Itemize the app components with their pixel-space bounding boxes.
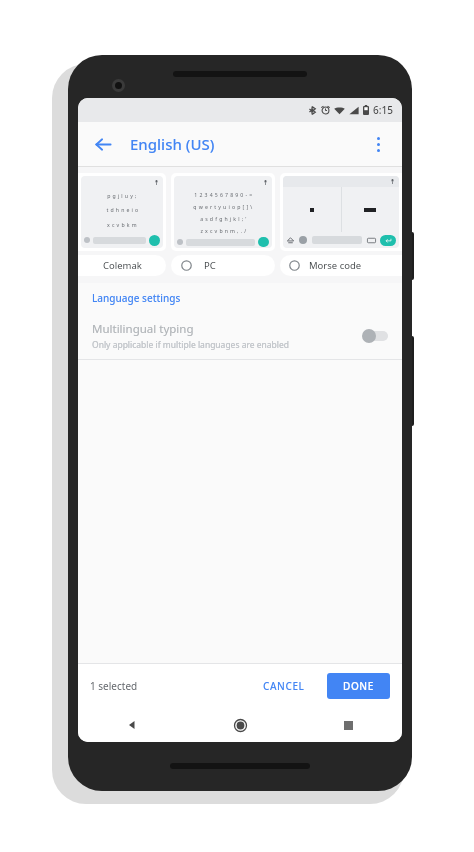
button[interactable]: More options <box>360 126 396 162</box>
staticText: CANCEL <box>263 679 305 693</box>
button[interactable]: 1 2 3 4 5 6 7 8 9 0 - = <box>171 173 275 251</box>
staticText: t d h n e i o <box>106 206 139 213</box>
staticText: Colemak <box>103 259 142 272</box>
button[interactable]: Home <box>186 708 294 742</box>
button[interactable]: Recent apps <box>294 708 402 742</box>
staticText: p g j l u y ; <box>107 192 137 199</box>
button[interactable]: DONE <box>327 673 390 699</box>
button[interactable]: p g j l u y ; <box>78 173 166 251</box>
staticText: 1 selected <box>90 679 138 693</box>
staticText: DONE <box>343 679 374 693</box>
staticText: a s d f g h j k l ; ' <box>200 215 247 222</box>
staticText: x c v b k m <box>107 221 137 228</box>
staticText: Only applicable if multiple languages ar… <box>92 339 290 351</box>
button[interactable]: Back <box>78 708 186 742</box>
button[interactable]: Colemak <box>78 255 166 276</box>
button[interactable]: CANCEL <box>253 672 315 700</box>
staticText: PC <box>204 259 216 272</box>
staticText: Morse code <box>309 259 362 272</box>
button[interactable]: Multilingual typing <box>78 313 402 359</box>
staticText: q w e r t y u i o p [ ] \ <box>193 203 253 210</box>
staticText: English (US) <box>130 134 215 154</box>
button[interactable] <box>280 173 402 251</box>
button[interactable]: PC <box>171 255 275 276</box>
staticText: Multilingual typing <box>92 321 194 337</box>
staticText: Language settings <box>92 291 181 305</box>
button[interactable]: Back <box>84 125 122 163</box>
staticText: 6:15 <box>373 103 393 117</box>
staticText: 1 2 3 4 5 6 7 8 9 0 - = <box>194 191 253 198</box>
button[interactable]: Morse code <box>280 255 402 276</box>
staticText: z x c v b n m , . / <box>200 227 247 234</box>
